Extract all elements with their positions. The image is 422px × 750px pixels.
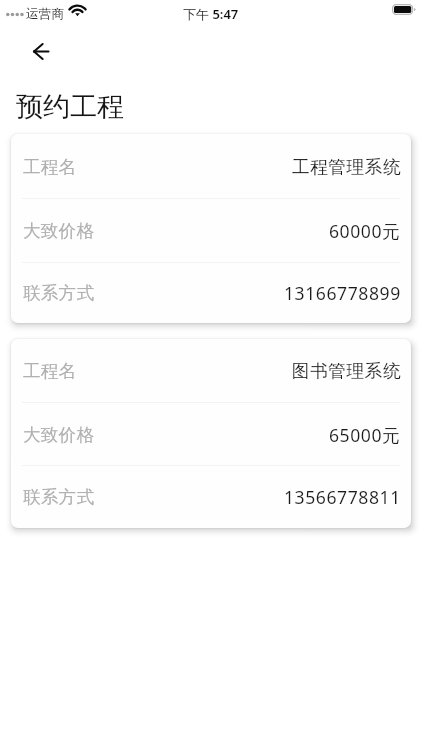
staticText: 工程管理系统: [292, 156, 401, 178]
button[interactable]: 大致价格: [11, 199, 411, 263]
staticText: 运营商: [26, 6, 65, 22]
staticText: 图书管理系统: [292, 360, 401, 382]
button[interactable]: 工程名: [11, 134, 411, 199]
staticText: 13166778899: [284, 281, 401, 305]
staticText: 65000元: [329, 423, 401, 447]
button[interactable]: 大致价格: [11, 403, 411, 466]
staticText: 工程名: [23, 360, 77, 382]
staticText: 下午 5:47: [183, 5, 239, 23]
button[interactable]: 联系方式: [11, 263, 411, 323]
button[interactable]: 工程名: [11, 339, 411, 403]
staticText: 工程名: [23, 156, 77, 178]
button[interactable]: 联系方式: [11, 466, 411, 528]
staticText: 大致价格: [23, 424, 95, 446]
staticText: 60000元: [329, 219, 401, 243]
staticText: 13566778811: [284, 485, 401, 509]
staticText: 联系方式: [23, 282, 95, 304]
staticText: 预约工程: [16, 90, 124, 124]
staticText: 联系方式: [23, 486, 95, 508]
staticText: 大致价格: [23, 220, 95, 242]
button[interactable]: Back: [26, 36, 56, 66]
